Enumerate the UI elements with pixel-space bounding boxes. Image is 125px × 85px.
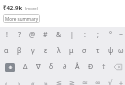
button[interactable]: ε bbox=[39, 43, 52, 59]
button[interactable]: β bbox=[13, 43, 26, 59]
staticText: γ bbox=[31, 46, 35, 56]
staticText: μ bbox=[69, 46, 74, 56]
button[interactable]: ∇ bbox=[32, 59, 45, 75]
button[interactable]: Shift bbox=[5, 63, 15, 72]
button[interactable]: μ bbox=[65, 43, 78, 59]
staticText: ; bbox=[97, 30, 99, 40]
button[interactable]: « bbox=[26, 79, 39, 85]
staticText: τ bbox=[96, 46, 100, 56]
button[interactable]: σ bbox=[78, 43, 91, 59]
staticText: More summary bbox=[5, 16, 38, 22]
button[interactable]: ? bbox=[13, 27, 26, 43]
button[interactable]: ° bbox=[104, 27, 117, 43]
staticText: ‹ bbox=[5, 79, 8, 85]
staticText: ? bbox=[18, 30, 22, 40]
button[interactable]: ∞ bbox=[91, 79, 104, 85]
button[interactable]: γ bbox=[26, 43, 39, 59]
staticText: » bbox=[44, 79, 48, 85]
button[interactable]: @ bbox=[26, 27, 39, 43]
button[interactable]: ; bbox=[91, 27, 104, 43]
staticText: ! bbox=[6, 30, 8, 40]
button[interactable]: ≈ bbox=[78, 79, 91, 85]
staticText: ° bbox=[109, 30, 112, 40]
staticText: ε bbox=[44, 46, 48, 56]
staticText: λ bbox=[57, 46, 61, 56]
staticText: Å bbox=[75, 62, 80, 72]
staticText: | bbox=[70, 30, 74, 40]
button[interactable]: | bbox=[65, 27, 78, 43]
staticText: α bbox=[4, 46, 9, 56]
staticText: : bbox=[84, 30, 86, 40]
button[interactable]: Ð bbox=[84, 59, 97, 75]
staticText: « bbox=[31, 79, 35, 85]
staticText: › bbox=[18, 79, 21, 85]
staticText: & bbox=[56, 30, 62, 40]
button[interactable]: ω bbox=[117, 43, 125, 59]
staticText: # bbox=[43, 30, 48, 40]
button[interactable]: δ bbox=[45, 59, 58, 75]
button[interactable]: # bbox=[39, 27, 52, 43]
staticText: β bbox=[17, 46, 22, 56]
staticText: ω bbox=[118, 46, 124, 56]
button[interactable]: Δ bbox=[19, 59, 32, 75]
staticText: Ð bbox=[88, 62, 94, 72]
button[interactable]: √ bbox=[104, 79, 117, 85]
staticText: ₹42.9k bbox=[3, 4, 23, 12]
button[interactable]: More summary bbox=[5, 14, 38, 23]
staticText: ∂ bbox=[63, 63, 67, 71]
staticText: ψ bbox=[108, 46, 114, 56]
button[interactable]: Å bbox=[71, 59, 84, 75]
button[interactable]: & bbox=[52, 27, 65, 43]
staticText: Δ bbox=[23, 62, 28, 72]
button[interactable]: ± bbox=[117, 79, 125, 85]
staticText: ∇ bbox=[36, 63, 41, 71]
button[interactable]: Backspace bbox=[110, 59, 125, 75]
button[interactable]: ≤ bbox=[52, 79, 65, 85]
staticText: (more) bbox=[25, 6, 38, 12]
staticText: σ bbox=[82, 46, 87, 56]
staticText: ± bbox=[119, 79, 124, 85]
button[interactable]: ‹ bbox=[0, 79, 13, 85]
staticText: @ bbox=[29, 30, 36, 40]
button[interactable]: ≥ bbox=[65, 79, 78, 85]
staticText: ≤ bbox=[56, 79, 62, 85]
staticText: √ bbox=[108, 79, 113, 85]
staticText: ∞ bbox=[95, 79, 101, 85]
button[interactable]: ψ bbox=[104, 43, 117, 59]
staticText: † bbox=[102, 62, 106, 72]
staticText: ≈ bbox=[82, 79, 88, 85]
button[interactable]: » bbox=[39, 79, 52, 85]
button[interactable]: τ bbox=[91, 43, 104, 59]
button[interactable]: λ bbox=[52, 43, 65, 59]
button[interactable]: ! bbox=[0, 27, 13, 43]
button[interactable]: ~ bbox=[117, 27, 125, 43]
button[interactable]: : bbox=[78, 27, 91, 43]
staticText: δ bbox=[49, 62, 54, 72]
button[interactable]: › bbox=[13, 79, 26, 85]
button[interactable]: ∂ bbox=[58, 59, 71, 75]
button[interactable]: † bbox=[97, 59, 110, 75]
button[interactable]: α bbox=[0, 43, 13, 59]
staticText: ≥ bbox=[69, 79, 75, 85]
staticText: ~ bbox=[119, 30, 124, 40]
